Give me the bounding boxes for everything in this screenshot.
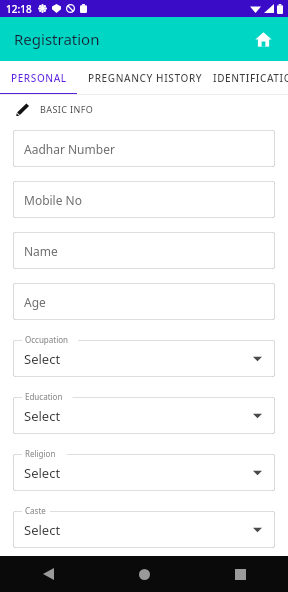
staticText: PERSONAL [11, 71, 67, 85]
staticText: Select [24, 464, 61, 482]
button[interactable]: Name [13, 232, 275, 269]
button[interactable]: Age [13, 283, 275, 320]
button[interactable]: Recent apps [192, 556, 288, 592]
button[interactable]: PERSONAL [0, 61, 77, 95]
button[interactable]: Home [248, 24, 278, 54]
button[interactable]: Select [13, 340, 275, 377]
button[interactable]: Select [13, 511, 275, 548]
staticText: PREGNANCY HISTORY [88, 71, 203, 85]
button[interactable]: Mobile No [13, 181, 275, 218]
button[interactable]: Back [0, 556, 96, 592]
staticText: Mobile No [24, 192, 82, 208]
staticText: IDENTIFICATION [213, 71, 288, 85]
staticText: Select [24, 407, 61, 425]
button[interactable]: PREGNANCY HISTORY [77, 61, 213, 95]
staticText: Caste [25, 505, 46, 516]
button[interactable]: IDENTIFICATION [213, 61, 288, 95]
button[interactable]: Aadhar Number [13, 130, 275, 167]
staticText: Occupation [25, 334, 69, 345]
button[interactable]: Select [13, 397, 275, 434]
staticText: Registration [14, 29, 100, 49]
staticText: Select [24, 521, 61, 539]
staticText: Age [24, 294, 46, 310]
staticText: Education [25, 391, 63, 402]
staticText: 12:18 [6, 2, 32, 16]
staticText: Aadhar Number [24, 141, 115, 157]
button[interactable]: Home [96, 556, 192, 592]
staticText: Name [24, 243, 58, 259]
staticText: Religion [25, 448, 56, 459]
staticText: Select [24, 350, 61, 368]
button[interactable]: Select [13, 454, 275, 491]
staticText: BASIC INFO [40, 103, 94, 115]
